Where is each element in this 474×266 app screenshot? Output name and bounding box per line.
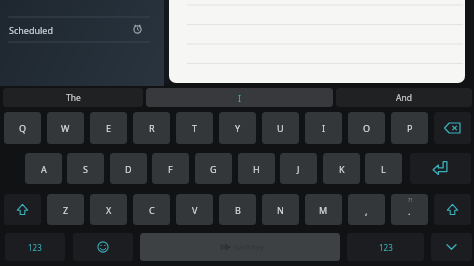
staticText: P [407,122,413,134]
button[interactable]: And [336,88,472,107]
staticText: C [149,204,155,216]
staticText: And [396,92,412,104]
button[interactable]: D [110,153,147,184]
button[interactable]: E [90,112,127,144]
staticText: . [408,205,411,218]
staticText: T [192,122,198,134]
staticText: L [381,163,386,175]
staticText: J [297,163,300,175]
staticText: E [106,122,112,134]
button[interactable] [410,153,471,184]
button[interactable]: Z [47,194,84,225]
staticText: H [253,163,260,175]
button[interactable]: Scheduled [0,17,164,42]
button[interactable]: I [146,88,333,107]
button[interactable]: F [152,153,189,184]
button[interactable]: 123 [5,233,65,261]
button[interactable] [434,112,471,144]
button[interactable]: ?! [391,194,428,225]
staticText: ?! [408,196,412,203]
staticText: SwiftKey [234,242,264,252]
staticText: S [83,163,88,175]
button[interactable] [4,194,41,225]
button[interactable]: C [133,194,170,225]
button[interactable]: R [133,112,170,144]
button[interactable]: , [348,194,385,225]
staticText: 123 [28,242,42,253]
button[interactable]: M [305,194,342,225]
button[interactable] [73,233,133,261]
button[interactable] [431,233,472,261]
button[interactable]: P [391,112,428,144]
button[interactable]: W [47,112,84,144]
staticText: W [61,122,70,134]
staticText: M [319,204,328,216]
button[interactable]: N [262,194,299,225]
button[interactable]: T [176,112,213,144]
button[interactable]: I [305,112,342,144]
button[interactable]: A [25,153,62,184]
staticText: G [210,163,217,175]
button[interactable]: K [323,153,360,184]
button[interactable]: H [238,153,275,184]
staticText: D [125,163,132,175]
staticText: The [66,92,81,104]
staticText: K [339,163,345,175]
button[interactable]: O [348,112,385,144]
staticText: I [322,122,326,134]
button[interactable]: 123 [347,233,424,261]
staticText: R [149,122,155,134]
button[interactable]: V [176,194,213,225]
staticText: V [192,204,198,216]
button[interactable]: B [219,194,256,225]
button[interactable]: U [262,112,299,144]
button[interactable]: Y [219,112,256,144]
button[interactable]: The [3,88,143,107]
staticText: X [106,204,112,216]
staticText: A [41,163,47,175]
staticText: F [168,163,173,175]
staticText: N [277,204,284,216]
staticText: O [363,122,371,134]
button[interactable]: L [365,153,402,184]
staticText: 123 [379,242,393,253]
staticText: Y [235,122,241,134]
staticText: , [365,205,368,218]
button[interactable]: X [90,194,127,225]
button[interactable]: Q [4,112,41,144]
staticText: B [235,204,241,216]
button[interactable]: S [67,153,104,184]
staticText: Z [63,204,69,216]
staticText: U [277,122,284,134]
staticText: Q [19,122,27,134]
button[interactable]: G [195,153,232,184]
button[interactable] [434,194,471,225]
staticText: Scheduled [9,24,53,36]
button[interactable]: J [280,153,317,184]
staticText: I [238,92,242,104]
